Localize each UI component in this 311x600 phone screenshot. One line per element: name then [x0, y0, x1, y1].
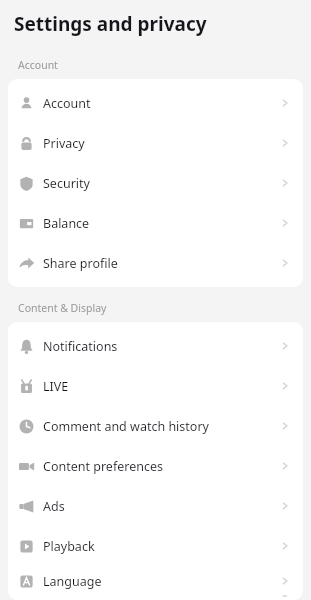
button[interactable]: Language: [8, 566, 303, 596]
button[interactable]: Content preferences: [8, 446, 303, 486]
button[interactable]: Security: [8, 163, 303, 203]
staticText: Privacy: [43, 135, 279, 152]
button[interactable]: Account: [8, 83, 303, 123]
button[interactable]: Comment and watch history: [8, 406, 303, 446]
button[interactable]: Playback: [8, 526, 303, 566]
staticText: Content preferences: [43, 458, 279, 475]
staticText: Ads: [43, 498, 279, 515]
staticText: Account: [43, 95, 279, 112]
staticText: LIVE: [43, 378, 279, 395]
staticText: Settings and privacy: [14, 11, 207, 37]
button[interactable]: Share profile: [8, 243, 303, 283]
button[interactable]: LIVE: [8, 366, 303, 406]
staticText: Playback: [43, 538, 279, 555]
button[interactable]: Privacy: [8, 123, 303, 163]
button[interactable]: Ads: [8, 486, 303, 526]
staticText: Share profile: [43, 255, 279, 272]
staticText: Content & Display: [18, 301, 107, 315]
staticText: Comment and watch history: [43, 418, 279, 435]
button[interactable]: Notifications: [8, 326, 303, 366]
staticText: Balance: [43, 215, 279, 232]
staticText: Language: [43, 573, 279, 590]
staticText: Security: [43, 175, 279, 192]
button[interactable]: Balance: [8, 203, 303, 243]
staticText: Notifications: [43, 338, 279, 355]
staticText: Account: [18, 58, 58, 72]
